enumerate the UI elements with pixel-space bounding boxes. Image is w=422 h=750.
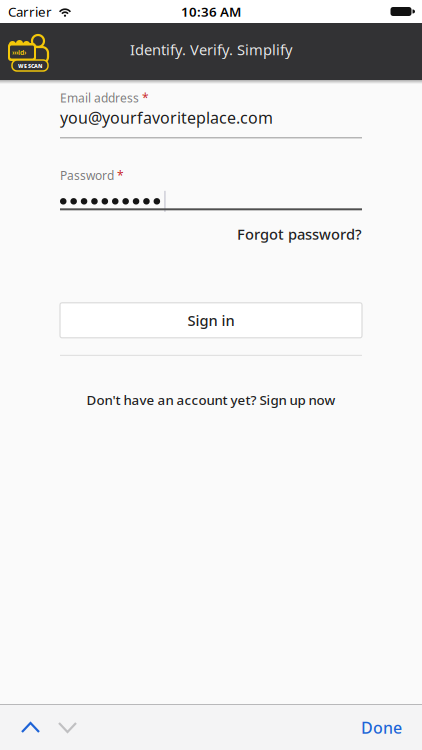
staticText: Carrier <box>8 3 52 20</box>
button[interactable]: Email address <box>60 90 362 138</box>
button[interactable]: Previous field <box>20 720 41 734</box>
staticText: Password <box>60 167 114 183</box>
button[interactable]: Password <box>60 167 362 210</box>
staticText: 10:36 AM <box>181 3 241 20</box>
staticText: Forgot password? <box>237 224 362 244</box>
button[interactable]: Forgot password? <box>237 224 362 244</box>
staticText: WE SCAN <box>18 62 42 70</box>
button[interactable]: Sign in <box>60 303 362 338</box>
staticText: Don't have an account yet? Sign up now <box>86 391 335 409</box>
staticText: Identify. Verify. Simplify <box>130 40 292 59</box>
staticText: Email address <box>60 90 139 106</box>
staticText: Done <box>361 717 402 738</box>
staticText: you@yourfavoriteplace.com <box>60 107 273 128</box>
button[interactable]: Done <box>361 717 402 738</box>
staticText: * <box>142 90 149 106</box>
staticText: ›››id› <box>12 48 26 57</box>
staticText: Sign in <box>187 311 234 330</box>
staticText: * <box>117 167 124 183</box>
button[interactable]: Don't have an account yet? Sign up now <box>60 391 362 409</box>
button[interactable]: Next field <box>57 720 78 734</box>
